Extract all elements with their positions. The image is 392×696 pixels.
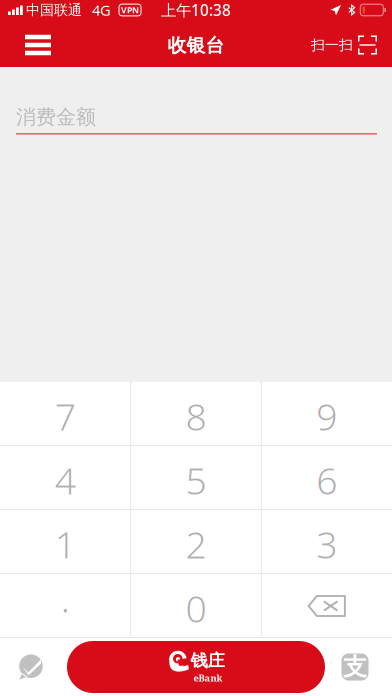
button[interactable]: 6: [261, 446, 392, 510]
button[interactable]: 钱庄: [67, 641, 325, 693]
staticText: 上午10:38: [161, 0, 231, 20]
button[interactable]: 3: [261, 510, 392, 574]
staticText: 7: [55, 391, 76, 441]
button[interactable]: 0: [131, 574, 261, 638]
staticText: 3: [316, 519, 337, 569]
staticText: ·: [61, 583, 70, 633]
staticText: 4G: [92, 0, 111, 20]
staticText: 收银台: [167, 34, 224, 57]
button[interactable]: Alipay: [325, 638, 392, 696]
staticText: 8: [185, 391, 206, 441]
button[interactable]: WeChat Pay: [0, 638, 67, 696]
button[interactable]: Menu: [0, 21, 67, 66]
staticText: 6: [316, 455, 337, 505]
button[interactable]: ·: [0, 574, 131, 638]
button[interactable]: 4: [0, 446, 131, 510]
button[interactable]: 9: [261, 382, 392, 446]
button[interactable]: [261, 574, 392, 638]
staticText: 9: [316, 391, 337, 441]
button[interactable]: 7: [0, 382, 131, 446]
staticText: 扫一扫: [311, 36, 353, 54]
staticText: 钱庄: [190, 650, 224, 671]
staticText: 消费金额: [16, 104, 96, 130]
button[interactable]: 扫一扫: [295, 21, 392, 65]
staticText: 5: [185, 455, 206, 505]
button[interactable]: 2: [131, 510, 261, 574]
button[interactable]: 5: [131, 446, 261, 510]
button[interactable]: 1: [0, 510, 131, 574]
staticText: 0: [185, 583, 206, 633]
staticText: 1: [55, 519, 76, 569]
staticText: 4: [55, 455, 76, 505]
button[interactable]: 8: [131, 382, 261, 446]
staticText: 中国联通: [26, 1, 82, 19]
staticText: 支: [343, 652, 367, 682]
staticText: 2: [185, 519, 206, 569]
staticText: eBank: [193, 672, 222, 684]
staticText: VPN: [121, 4, 139, 16]
